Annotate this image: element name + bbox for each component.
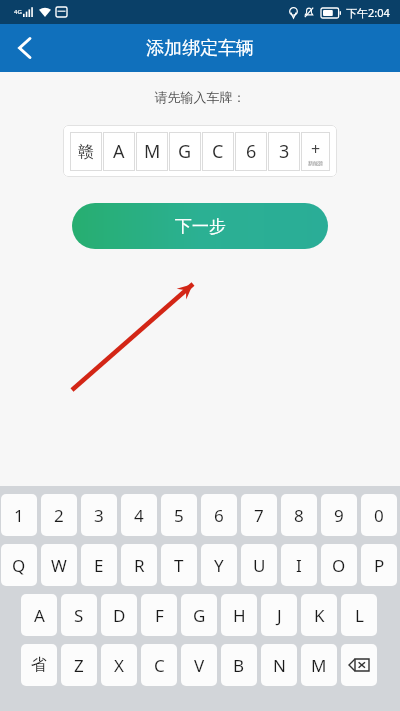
staticText: 9 [334, 504, 344, 527]
button[interactable]: F [141, 594, 177, 636]
button[interactable]: 4 [121, 494, 157, 536]
staticText: C [154, 654, 165, 677]
staticText: P [374, 554, 385, 577]
button[interactable]: A [103, 132, 135, 171]
button[interactable]: G [181, 594, 217, 636]
button[interactable]: V [181, 644, 217, 686]
staticText: 省 [31, 655, 47, 675]
staticText: T [174, 554, 184, 577]
staticText: A [113, 139, 125, 164]
staticText: 1 [14, 504, 24, 527]
button[interactable]: M [136, 132, 168, 171]
staticText: 3 [279, 139, 290, 164]
button[interactable]: J [261, 594, 297, 636]
staticText: 下一步 [175, 216, 226, 237]
button[interactable]: O [321, 544, 357, 586]
button[interactable]: 赣 [70, 132, 102, 171]
staticText: 4G [14, 8, 22, 16]
staticText: E [94, 554, 104, 577]
staticText: K [314, 604, 325, 627]
staticText: 4 [134, 504, 144, 527]
staticText: 赣 [78, 142, 94, 162]
button[interactable]: 0 [361, 494, 397, 536]
button[interactable]: C [141, 644, 177, 686]
button[interactable]: P [361, 544, 397, 586]
button[interactable]: N [261, 644, 297, 686]
button[interactable]: 6 [201, 494, 237, 536]
button[interactable]: 新能源 [301, 132, 330, 171]
staticText: I [296, 554, 302, 577]
button[interactable]: E [81, 544, 117, 586]
staticText: J [277, 604, 282, 627]
button[interactable]: 3 [268, 132, 300, 171]
button[interactable]: Backspace [341, 644, 377, 686]
button[interactable]: R [121, 544, 157, 586]
staticText: B [233, 654, 245, 677]
staticText: W [51, 554, 67, 577]
button[interactable]: L [341, 594, 377, 636]
staticText: S [74, 604, 84, 627]
button[interactable]: 8 [281, 494, 317, 536]
button[interactable]: M [301, 644, 337, 686]
button[interactable]: K [301, 594, 337, 636]
staticText: H [233, 604, 246, 627]
staticText: G [178, 139, 192, 164]
button[interactable]: 7 [241, 494, 277, 536]
button[interactable]: 省 [21, 644, 57, 686]
button[interactable]: G [169, 132, 201, 171]
staticText: Q [12, 554, 26, 577]
button[interactable]: W [41, 544, 77, 586]
button[interactable]: 3 [81, 494, 117, 536]
button[interactable]: 1 [1, 494, 37, 536]
button[interactable]: Z [61, 644, 97, 686]
staticText: M [311, 654, 327, 677]
staticText: 3 [94, 504, 104, 527]
button[interactable]: I [281, 544, 317, 586]
staticText: 2 [54, 504, 64, 527]
staticText: 添加绑定车辆 [146, 37, 254, 60]
staticText: 0 [374, 504, 384, 527]
button[interactable]: 6 [235, 132, 267, 171]
button[interactable]: U [241, 544, 277, 586]
staticText: 7 [254, 504, 264, 527]
button[interactable]: X [101, 644, 137, 686]
staticText: R [134, 554, 145, 577]
staticText: O [332, 554, 346, 577]
staticText: 5 [174, 504, 184, 527]
button[interactable]: B [221, 644, 257, 686]
button[interactable]: 下一步 [72, 203, 328, 249]
button[interactable]: T [161, 544, 197, 586]
staticText: C [212, 139, 224, 164]
staticText: D [113, 604, 126, 627]
staticText: M [144, 139, 161, 164]
button[interactable]: D [101, 594, 137, 636]
button[interactable]: H [221, 594, 257, 636]
button[interactable]: 9 [321, 494, 357, 536]
button[interactable]: Q [1, 544, 37, 586]
button[interactable]: S [61, 594, 97, 636]
staticText: F [155, 604, 164, 627]
button[interactable]: A [21, 594, 57, 636]
staticText: G [193, 604, 206, 627]
staticText: 下午2:04 [346, 5, 390, 20]
staticText: Z [74, 654, 84, 677]
staticText: 新能源 [308, 160, 323, 166]
staticText: 8 [294, 504, 304, 527]
button[interactable]: 5 [161, 494, 197, 536]
staticText: L [355, 604, 364, 627]
staticText: V [194, 654, 205, 677]
staticText: A [34, 604, 45, 627]
staticText: U [253, 554, 266, 577]
staticText: 6 [214, 504, 224, 527]
staticText: Y [214, 554, 224, 577]
staticText: X [114, 654, 124, 677]
staticText: N [273, 654, 286, 677]
staticText: 请先输入车牌： [0, 89, 400, 105]
staticText: + [311, 138, 321, 160]
button[interactable]: C [202, 132, 234, 171]
button[interactable]: Back [0, 24, 48, 72]
button[interactable]: Y [201, 544, 237, 586]
staticText: 6 [246, 139, 257, 164]
button[interactable]: 2 [41, 494, 77, 536]
